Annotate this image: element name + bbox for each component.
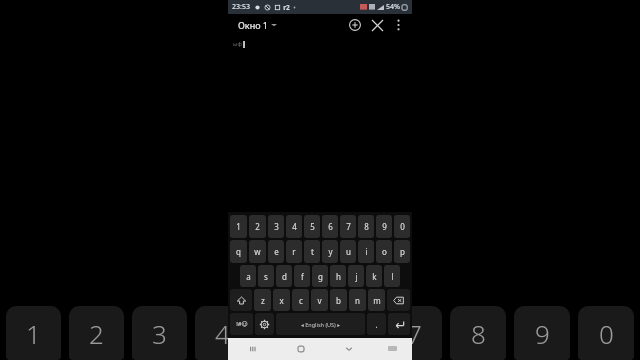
button[interactable]: u xyxy=(340,240,356,263)
staticText: j xyxy=(355,271,358,282)
button[interactable]: Add window xyxy=(344,14,366,36)
staticText: 0 xyxy=(599,316,614,351)
staticText: 3 xyxy=(274,221,279,232)
staticText: 4 xyxy=(292,221,297,232)
staticText: v xyxy=(317,295,322,306)
staticText: 4 xyxy=(215,316,230,351)
button[interactable]: m xyxy=(368,289,385,311)
button[interactable]: q xyxy=(230,240,247,263)
staticText: w xyxy=(254,246,261,257)
button[interactable]: d xyxy=(276,265,292,287)
button[interactable]: 8 xyxy=(358,215,374,238)
button[interactable]: 4 xyxy=(195,306,250,360)
button[interactable]: 0 xyxy=(578,306,634,360)
button[interactable]: Recents xyxy=(228,338,277,360)
staticText: 8 xyxy=(471,316,486,351)
button[interactable]: 3 xyxy=(132,306,187,360)
staticText: 6 xyxy=(328,221,333,232)
button[interactable]: Close xyxy=(366,14,388,36)
button[interactable]: y xyxy=(322,240,338,263)
staticText: r xyxy=(292,246,296,257)
staticText: 23:53 xyxy=(232,2,250,12)
button[interactable]: 6 xyxy=(322,215,338,238)
button[interactable]: i xyxy=(358,240,374,263)
button[interactable]: g xyxy=(312,265,328,287)
staticText: l xyxy=(391,271,394,282)
button[interactable]: Hide keyboard xyxy=(325,338,373,360)
button[interactable]: a xyxy=(240,265,256,287)
button[interactable]: 8 xyxy=(450,306,506,360)
button[interactable]: Окно 1 xyxy=(238,19,277,31)
button[interactable]: Backspace xyxy=(387,289,410,311)
button[interactable]: 2 xyxy=(249,215,266,238)
button[interactable]: ыф xyxy=(228,36,412,212)
button[interactable]: o xyxy=(376,240,392,263)
staticText: c xyxy=(299,295,303,306)
button[interactable]: v xyxy=(311,289,328,311)
staticText: 5 xyxy=(279,316,294,351)
button[interactable]: More options xyxy=(388,15,408,35)
staticText: !#☺ xyxy=(236,320,248,328)
staticText: 9 xyxy=(535,316,550,351)
button[interactable]: n xyxy=(349,289,366,311)
button[interactable]: f xyxy=(294,265,310,287)
button[interactable]: !#☺ xyxy=(230,313,253,335)
staticText: x xyxy=(279,295,284,306)
button[interactable]: 9 xyxy=(376,215,392,238)
button[interactable]: e xyxy=(268,240,284,263)
button[interactable]: ◂ English (US) ▸ xyxy=(276,313,365,335)
button[interactable]: 2 xyxy=(69,306,124,360)
button[interactable]: Enter xyxy=(388,313,410,335)
staticText: 1 xyxy=(236,221,241,232)
button[interactable]: 7 xyxy=(386,306,442,360)
staticText: t xyxy=(311,246,314,257)
staticText: ◂ English (US) ▸ xyxy=(301,321,340,328)
button[interactable]: s xyxy=(258,265,274,287)
button[interactable]: 6 xyxy=(322,306,378,360)
staticText: y xyxy=(328,246,333,257)
button[interactable]: w xyxy=(249,240,266,263)
button[interactable]: b xyxy=(330,289,347,311)
staticText: h xyxy=(336,271,341,282)
button[interactable]: x xyxy=(273,289,290,311)
button[interactable]: p xyxy=(394,240,410,263)
staticText: z xyxy=(261,295,265,306)
staticText: k xyxy=(372,271,377,282)
button[interactable]: 5 xyxy=(304,215,320,238)
staticText: 0 xyxy=(400,221,405,232)
staticText: 8 xyxy=(364,221,369,232)
button[interactable]: Keyboard layout xyxy=(373,338,412,360)
staticText: o xyxy=(382,246,387,257)
staticText: b xyxy=(336,295,341,306)
staticText: Окно 1 xyxy=(238,19,268,31)
button[interactable]: t xyxy=(304,240,320,263)
button[interactable]: j xyxy=(348,265,364,287)
staticText: s xyxy=(264,271,268,282)
staticText: a xyxy=(246,271,251,282)
button[interactable]: 4 xyxy=(286,215,302,238)
button[interactable]: 0 xyxy=(394,215,410,238)
staticText: f xyxy=(301,271,304,282)
button[interactable]: 3 xyxy=(268,215,284,238)
button[interactable]: 1 xyxy=(6,306,61,360)
staticText: n xyxy=(355,295,360,306)
button[interactable]: Shift xyxy=(230,289,252,311)
button[interactable]: 7 xyxy=(340,215,356,238)
button[interactable]: z xyxy=(254,289,271,311)
button[interactable]: 9 xyxy=(514,306,570,360)
staticText: 54% xyxy=(386,2,400,12)
button[interactable]: h xyxy=(330,265,346,287)
button[interactable]: k xyxy=(366,265,382,287)
button[interactable]: Home xyxy=(277,338,325,360)
staticText: ыф xyxy=(233,40,242,48)
button[interactable]: Keyboard settings xyxy=(255,313,274,335)
button[interactable]: l xyxy=(384,265,400,287)
button[interactable]: r xyxy=(286,240,302,263)
button[interactable]: 1 xyxy=(230,215,247,238)
staticText: p xyxy=(400,246,405,257)
staticText: 7 xyxy=(346,221,351,232)
button[interactable]: . xyxy=(367,313,386,335)
button[interactable]: 5 xyxy=(258,306,314,360)
button[interactable]: c xyxy=(292,289,309,311)
staticText: q xyxy=(236,246,241,257)
